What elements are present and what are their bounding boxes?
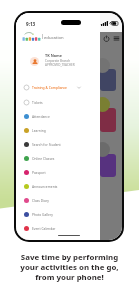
staticText: 9:13 xyxy=(26,21,36,27)
staticText: Learning xyxy=(32,128,46,132)
button[interactable]: Class Diary xyxy=(16,193,100,207)
staticText: Class Diary xyxy=(32,198,49,202)
staticText: APPROVED_TEACHER xyxy=(45,63,75,67)
button[interactable]: Online Classes xyxy=(16,151,100,165)
button[interactable]: Passport xyxy=(16,165,100,179)
staticText: Photo Gallery xyxy=(32,212,53,216)
button[interactable]: Menu xyxy=(113,35,120,42)
staticText: Search for Student xyxy=(32,142,61,146)
staticText: Corporate Branch xyxy=(45,59,70,63)
button[interactable]: Search for Student xyxy=(16,137,100,151)
staticText: Tickets xyxy=(32,100,43,104)
staticText: education xyxy=(44,35,64,41)
staticText: Event Calendar xyxy=(32,226,56,230)
button[interactable]: Training & Compliance xyxy=(16,80,100,94)
staticText: Passport xyxy=(32,170,46,174)
button[interactable]: Photo Gallery xyxy=(16,207,100,221)
staticText: Announcements xyxy=(32,184,58,188)
staticText: Training & Compliance xyxy=(32,85,67,89)
button[interactable]: Attendance xyxy=(16,109,100,123)
staticText: TK Name xyxy=(45,53,63,58)
staticText: Online Classes xyxy=(32,156,55,160)
button[interactable]: Logout xyxy=(103,35,110,42)
staticText: Attendance xyxy=(32,114,50,118)
button[interactable]: Announcements xyxy=(16,179,100,193)
button[interactable]: Tickets xyxy=(16,95,100,109)
button[interactable]: Event Calendar xyxy=(16,221,100,235)
staticText: Save time by performing your activities … xyxy=(20,252,119,282)
button[interactable]: Learning xyxy=(16,123,100,137)
